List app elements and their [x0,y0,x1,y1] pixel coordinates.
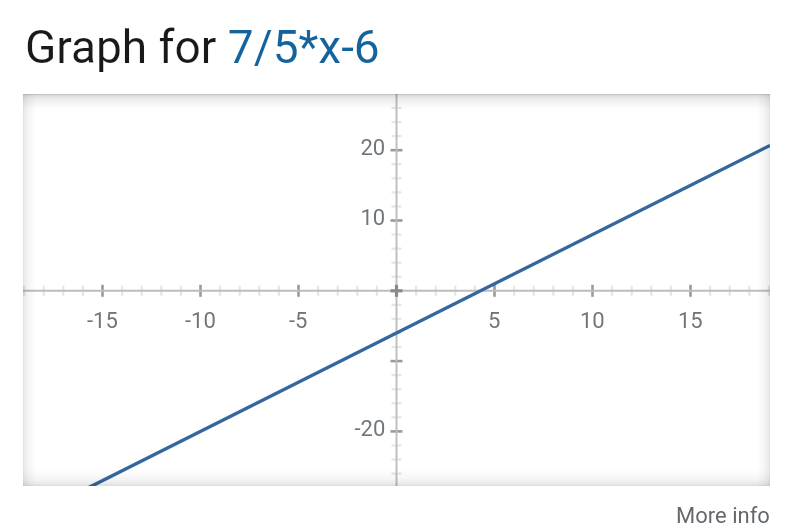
staticText: Graph for 7/5*x-6 [25,20,380,74]
staticText: More info [676,503,770,529]
button[interactable]: More info [676,503,770,529]
button[interactable] [23,94,770,486]
